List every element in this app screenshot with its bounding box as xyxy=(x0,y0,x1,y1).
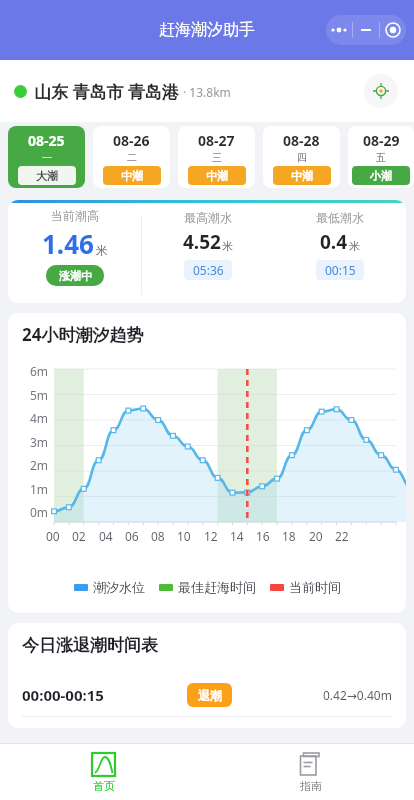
button[interactable]: 08-26 xyxy=(93,126,170,188)
staticText: 山东 青岛市 青岛港 xyxy=(34,80,179,103)
staticText: 中潮 xyxy=(291,169,313,183)
staticText: 08 xyxy=(151,528,165,544)
button[interactable]: 08-29 xyxy=(348,126,414,188)
staticText: 16 xyxy=(256,528,270,544)
staticText: 08-25 xyxy=(28,131,65,150)
staticText: 06 xyxy=(125,528,139,544)
staticText: 最佳赶海时间 xyxy=(178,579,256,595)
staticText: 二 xyxy=(127,151,137,164)
staticText: 潮汐水位 xyxy=(93,579,145,595)
button[interactable]: 08-28 xyxy=(263,126,340,188)
staticText: 中潮 xyxy=(206,169,228,183)
staticText: 米 xyxy=(222,239,233,253)
staticText: 涨潮中 xyxy=(59,269,92,283)
staticText: 08-26 xyxy=(113,131,150,150)
staticText: 米 xyxy=(96,243,108,258)
staticText: 18 xyxy=(282,528,296,544)
staticText: 00 xyxy=(46,528,60,544)
staticText: 最高潮水 xyxy=(184,210,232,225)
staticText: 6m xyxy=(22,363,48,379)
staticText: 1m xyxy=(22,481,48,497)
button[interactable]: Locate xyxy=(364,74,398,108)
staticText: 08-29 xyxy=(363,131,400,150)
staticText: 0.42→0.40m xyxy=(323,687,392,703)
staticText: 12 xyxy=(204,528,218,544)
staticText: 赶海潮汐助手 xyxy=(159,20,255,40)
staticText: 5m xyxy=(22,387,48,403)
staticText: · 13.8km xyxy=(183,84,231,100)
staticText: 退潮 xyxy=(198,688,222,703)
staticText: 当前时间 xyxy=(289,579,341,595)
staticText: 最低潮水 xyxy=(316,210,364,225)
staticText: 02 xyxy=(72,528,86,544)
staticText: 一 xyxy=(42,151,52,164)
staticText: 米 xyxy=(349,239,360,253)
staticText: 指南 xyxy=(300,779,322,793)
staticText: 24小时潮汐趋势 xyxy=(22,323,144,346)
staticText: 大潮 xyxy=(36,169,58,183)
staticText: 4m xyxy=(22,410,48,426)
staticText: 小潮 xyxy=(370,169,392,183)
button[interactable]: 指南 xyxy=(207,744,414,800)
staticText: 四 xyxy=(297,151,307,164)
staticText: 2m xyxy=(22,457,48,473)
button[interactable]: 山东 青岛市 青岛港 xyxy=(14,80,231,103)
staticText: 08-28 xyxy=(283,131,320,150)
button[interactable]: 00:00-00:15 xyxy=(8,674,406,716)
button[interactable]: 08-25 xyxy=(8,126,85,188)
staticText: 08-27 xyxy=(198,131,235,150)
staticText: 4.52 xyxy=(183,229,221,255)
staticText: 10 xyxy=(177,528,191,544)
staticText: 当前潮高 xyxy=(51,208,99,223)
button[interactable]: 首页 xyxy=(0,744,207,800)
staticText: 22 xyxy=(335,528,349,544)
staticText: 00:15 xyxy=(325,262,356,278)
staticText: 今日涨退潮时间表 xyxy=(22,635,158,656)
staticText: 五 xyxy=(376,151,386,164)
staticText: 20 xyxy=(309,528,323,544)
staticText: 1.46 xyxy=(42,226,94,261)
staticText: 0.4 xyxy=(320,229,348,255)
staticText: 首页 xyxy=(93,779,115,793)
staticText: 14 xyxy=(230,528,244,544)
staticText: 三 xyxy=(212,151,222,164)
button[interactable]: Mini program menu xyxy=(326,15,406,45)
staticText: 3m xyxy=(22,434,48,450)
staticText: 0m xyxy=(22,504,48,520)
staticText: 05:36 xyxy=(193,262,224,278)
button[interactable]: 08-27 xyxy=(178,126,255,188)
staticText: 00:00-00:15 xyxy=(22,685,104,705)
staticText: 中潮 xyxy=(121,169,143,183)
staticText: 04 xyxy=(99,528,113,544)
